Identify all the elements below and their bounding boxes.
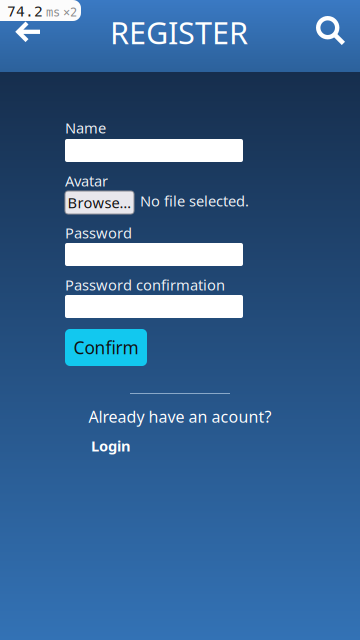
staticText: No file selected.	[140, 191, 249, 210]
staticText: 74.2	[7, 3, 43, 20]
staticText: Already have an acount?	[88, 406, 271, 427]
staticText: ×2	[63, 5, 77, 19]
staticText: Password confirmation	[65, 275, 225, 294]
staticText: Name	[65, 118, 106, 137]
staticText: Browse…	[67, 193, 131, 212]
button[interactable]: Login	[85, 433, 137, 458]
button[interactable]: Confirm	[65, 329, 147, 366]
staticText: Avatar	[65, 171, 108, 190]
staticText: Confirm	[73, 336, 138, 359]
staticText: Login	[91, 436, 131, 455]
staticText: ms	[46, 5, 60, 19]
button[interactable]: Browse…	[65, 191, 134, 214]
button[interactable]: Search	[300, 0, 360, 72]
staticText: Password	[65, 223, 132, 242]
staticText: REGISTER	[110, 12, 248, 53]
button[interactable]: Back	[0, 0, 56, 72]
